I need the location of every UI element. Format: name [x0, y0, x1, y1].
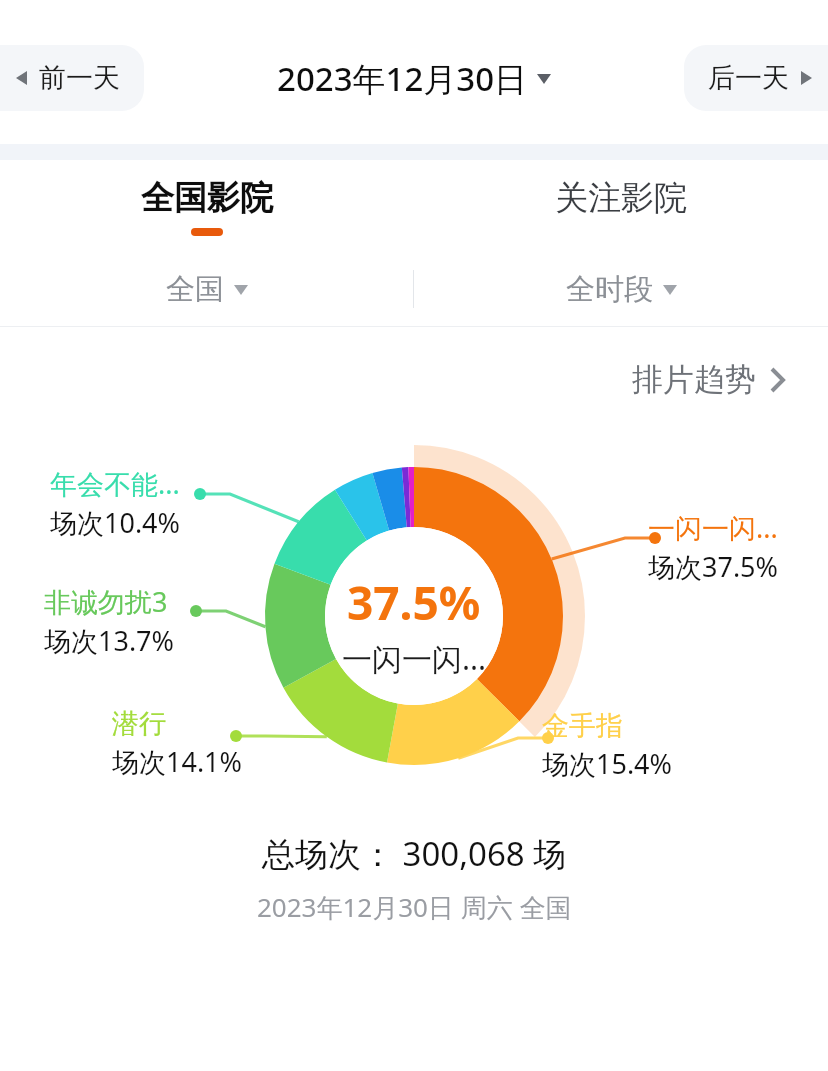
- staticText: 全国影院: [141, 177, 273, 219]
- staticText: 前一天: [39, 61, 120, 95]
- staticText: 非诚勿扰3: [44, 583, 168, 620]
- staticText: 一闪一闪...: [648, 509, 778, 546]
- staticText: 潜行: [112, 707, 166, 741]
- staticText: 后一天: [708, 61, 789, 95]
- staticText: 排片趋势: [632, 360, 756, 399]
- staticText: 场次37.5%: [648, 548, 779, 585]
- staticText: 37.5%: [347, 571, 481, 634]
- button[interactable]: 后一天: [684, 45, 828, 111]
- staticText: 2023年12月30日 周六 全国: [257, 889, 572, 925]
- button[interactable]: 全国影院: [0, 160, 414, 252]
- button[interactable]: 2023年12月30日: [277, 56, 551, 101]
- button[interactable]: 全时段: [414, 252, 828, 326]
- button[interactable]: 前一天: [0, 45, 144, 111]
- button[interactable]: 排片趋势: [624, 352, 794, 407]
- staticText: 场次10.4%: [50, 504, 181, 541]
- staticText: 一闪一闪...: [342, 638, 487, 679]
- button[interactable]: 关注影院: [414, 160, 828, 252]
- button[interactable]: 全国: [0, 252, 413, 326]
- staticText: 场次14.1%: [112, 743, 243, 780]
- staticText: 全时段: [566, 271, 653, 308]
- staticText: 总场次： 300,068 场: [262, 831, 567, 876]
- staticText: 场次13.7%: [44, 622, 175, 659]
- staticText: 场次15.4%: [542, 745, 673, 782]
- staticText: 金手指: [542, 709, 623, 743]
- staticText: 年会不能...: [50, 465, 180, 502]
- staticText: 关注影院: [555, 177, 687, 219]
- staticText: 全国: [166, 271, 224, 308]
- staticText: 2023年12月30日: [277, 56, 528, 101]
